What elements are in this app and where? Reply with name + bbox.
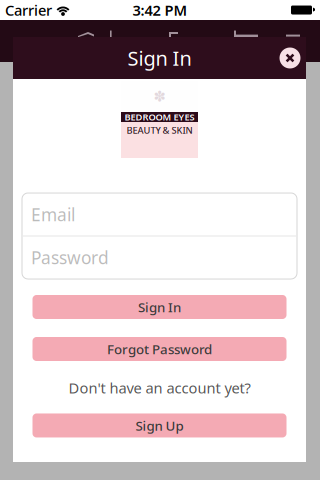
staticText: Email <box>31 203 75 226</box>
staticText: Forgot Password <box>107 340 212 358</box>
staticText: Carrier <box>5 0 52 20</box>
button[interactable]: Close <box>275 43 305 73</box>
staticText: Sign In <box>138 298 181 316</box>
staticText: Sign Up <box>135 417 183 434</box>
button[interactable]: Sign In <box>32 295 286 319</box>
staticText: BEAUTY & SKIN <box>126 124 192 136</box>
staticText: Sign In <box>127 45 191 71</box>
button[interactable]: Forgot Password <box>32 337 286 361</box>
staticText: ✽ <box>153 88 165 105</box>
staticText: Don't have an account yet? <box>68 378 250 397</box>
button[interactable]: Sign Up <box>32 413 286 437</box>
staticText: 3:42 PM <box>132 0 187 20</box>
staticText: Password <box>31 246 109 269</box>
staticText: BEDROOM EYES <box>124 111 194 123</box>
